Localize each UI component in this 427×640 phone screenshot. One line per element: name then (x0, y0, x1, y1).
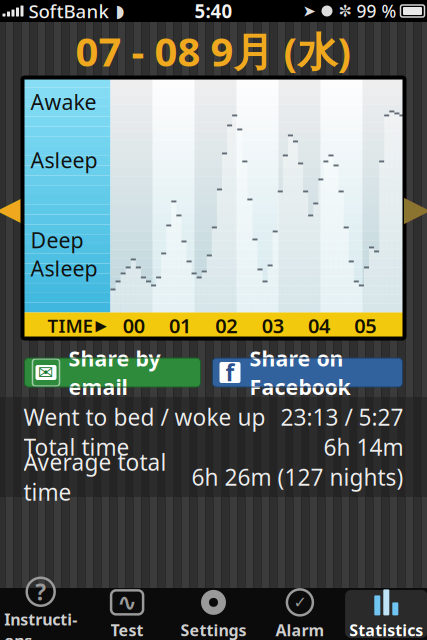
staticText: Instructions (4, 609, 77, 640)
staticText: ∿ (117, 589, 137, 616)
button[interactable]: ✓ (257, 590, 343, 638)
staticText: 07 - 08 9月 (水) (75, 24, 351, 77)
staticText: Share by email (68, 344, 160, 401)
staticText: Awake (30, 87, 96, 116)
staticText: Test (111, 619, 144, 640)
staticText: Total time (23, 432, 129, 462)
staticText: 99 % (356, 0, 396, 22)
staticText: Alarm (275, 619, 324, 640)
staticText: ? (35, 577, 46, 607)
staticText: f (225, 357, 234, 387)
staticText: Asleep (30, 254, 97, 282)
staticText: 23:13 / 5:27 (280, 402, 403, 432)
staticText: ▶ (403, 188, 427, 228)
staticText: 02 (215, 312, 237, 339)
staticText: ◗ (115, 1, 124, 21)
button[interactable]: ∿ (84, 590, 170, 638)
staticText: 5:40 (194, 0, 232, 23)
button[interactable]: ? (0, 590, 84, 638)
staticText: ◀ (0, 188, 23, 228)
staticText: Statistics (349, 619, 423, 640)
button[interactable]: Statistics (343, 590, 427, 638)
button[interactable]: f (212, 358, 402, 387)
staticText: 6h 14m (323, 432, 403, 462)
button[interactable]: Next night (404, 74, 427, 342)
staticText: 04 (308, 312, 330, 339)
staticText: Deep (30, 226, 83, 254)
staticText: SoftBank (28, 0, 108, 23)
staticText: ✼ (338, 2, 351, 20)
staticText: ▶ (95, 317, 106, 334)
button[interactable]: ✉ (24, 358, 200, 387)
staticText: ✉ (38, 362, 54, 383)
button[interactable]: Previous night (0, 74, 22, 342)
staticText: 00 (123, 312, 145, 339)
staticText: 01 (169, 312, 191, 339)
staticText: 6h 26m (127 nights) (191, 462, 403, 492)
staticText: TIME (47, 313, 92, 338)
staticText: 03 (262, 312, 284, 339)
staticText: Asleep (30, 146, 97, 174)
staticText: Settings (180, 619, 246, 640)
staticText: ➤ (302, 2, 315, 20)
staticText: 05 (354, 312, 376, 339)
staticText: ✓ (293, 593, 306, 611)
staticText: Average total time (23, 447, 166, 507)
button[interactable]: Settings (170, 590, 257, 638)
staticText: Went to bed / woke up (23, 402, 265, 432)
staticText: Share on Facebook (249, 344, 350, 401)
